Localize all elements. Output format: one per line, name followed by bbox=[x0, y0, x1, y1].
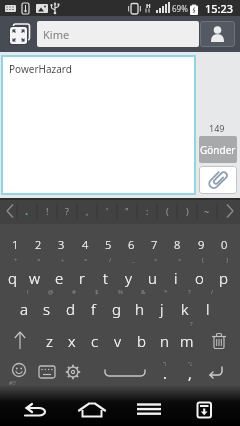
staticText: 0 bbox=[221, 237, 228, 252]
button[interactable] bbox=[98, 362, 152, 384]
button[interactable]: 0 bbox=[213, 234, 235, 254]
button[interactable]: PowerHazard bbox=[1, 55, 196, 195]
button[interactable]: c bbox=[84, 328, 106, 354]
staticText: = bbox=[84, 256, 88, 264]
button[interactable]: b bbox=[130, 328, 152, 354]
staticText: > bbox=[178, 256, 182, 264]
button[interactable]: y bbox=[117, 265, 141, 291]
button[interactable]: ~ bbox=[198, 201, 216, 221]
button[interactable] bbox=[20, 402, 50, 420]
staticText: 5 bbox=[105, 237, 112, 252]
staticText: _ bbox=[132, 256, 135, 264]
button[interactable]: Gönder bbox=[199, 136, 237, 163]
staticText: b bbox=[137, 331, 146, 351]
button[interactable]: d bbox=[58, 296, 82, 322]
button[interactable] bbox=[136, 402, 162, 420]
staticText: * bbox=[164, 288, 168, 296]
staticText: q bbox=[8, 268, 17, 288]
staticText: $ bbox=[95, 288, 99, 296]
button[interactable]: x bbox=[61, 328, 83, 354]
button[interactable]: f bbox=[81, 296, 105, 322]
button[interactable]: j bbox=[150, 296, 174, 322]
button[interactable]: n bbox=[153, 328, 175, 354]
button[interactable]: : bbox=[138, 201, 156, 221]
button[interactable] bbox=[62, 362, 84, 382]
button[interactable]: ( bbox=[158, 201, 176, 221]
staticText: •¡ bbox=[163, 360, 167, 366]
staticText: e bbox=[55, 268, 64, 288]
button[interactable] bbox=[207, 330, 231, 352]
button[interactable]: 3 bbox=[50, 234, 72, 254]
button[interactable] bbox=[200, 21, 235, 47]
staticText: ( bbox=[166, 205, 169, 217]
staticText: 7 bbox=[151, 237, 158, 252]
button[interactable]: h bbox=[127, 296, 151, 322]
button[interactable]: p bbox=[211, 265, 235, 291]
button[interactable]: 2 bbox=[27, 234, 49, 254]
button[interactable]: 7 bbox=[143, 234, 165, 254]
button[interactable]: o bbox=[187, 265, 211, 291]
staticText: y bbox=[125, 268, 133, 288]
button[interactable]: t bbox=[94, 265, 118, 291]
button[interactable]: , bbox=[181, 363, 199, 383]
staticText: ) bbox=[186, 205, 189, 217]
button[interactable]: , bbox=[78, 201, 96, 221]
button[interactable]: r bbox=[70, 265, 94, 291]
staticText: l bbox=[206, 299, 210, 319]
button[interactable] bbox=[199, 166, 237, 194]
staticText: + bbox=[14, 256, 18, 264]
button[interactable]: 9 bbox=[190, 234, 212, 254]
button[interactable]: s bbox=[35, 296, 59, 322]
button[interactable]: 8 bbox=[166, 234, 188, 254]
staticText: @ bbox=[48, 288, 54, 296]
button[interactable]: u bbox=[140, 265, 164, 291]
staticText: 2 bbox=[35, 237, 42, 252]
staticText: . bbox=[25, 203, 29, 218]
button[interactable]: . bbox=[156, 363, 174, 383]
button[interactable]: l bbox=[196, 296, 220, 322]
button[interactable]: 6 bbox=[120, 234, 142, 254]
button[interactable] bbox=[8, 330, 32, 352]
button[interactable]: . bbox=[18, 200, 36, 220]
staticText: 3 bbox=[58, 237, 65, 252]
button[interactable]: k bbox=[173, 296, 197, 322]
button[interactable]: 4 bbox=[74, 234, 96, 254]
button[interactable] bbox=[196, 402, 216, 420]
button[interactable]: ) bbox=[178, 201, 196, 221]
button[interactable]: z bbox=[38, 328, 60, 354]
staticText: h bbox=[135, 299, 144, 319]
staticText: o bbox=[195, 268, 204, 288]
staticText: 4 bbox=[82, 237, 89, 252]
staticText: 69% bbox=[172, 3, 188, 14]
button[interactable]: 1 bbox=[4, 234, 26, 254]
button[interactable]: w bbox=[23, 265, 47, 291]
button[interactable]: ! bbox=[38, 201, 56, 221]
staticText: % bbox=[118, 288, 123, 296]
button[interactable]: i bbox=[164, 265, 188, 291]
button[interactable]: g bbox=[104, 296, 128, 322]
button[interactable]: ' bbox=[98, 201, 116, 221]
staticText: x bbox=[68, 331, 76, 351]
staticText: H bbox=[146, 2, 151, 10]
staticText: a bbox=[20, 299, 29, 319]
button[interactable]: ? bbox=[58, 201, 76, 221]
button[interactable] bbox=[8, 22, 32, 46]
button[interactable] bbox=[204, 362, 228, 384]
staticText: ] bbox=[226, 256, 228, 264]
button[interactable]: m bbox=[176, 328, 198, 354]
button[interactable]: v bbox=[107, 328, 129, 354]
button[interactable]: q bbox=[0, 265, 24, 291]
button[interactable]: a bbox=[12, 296, 36, 322]
staticText: r bbox=[79, 268, 85, 288]
staticText: •¿ bbox=[188, 360, 193, 366]
staticText: f bbox=[91, 299, 96, 319]
button[interactable]: e bbox=[47, 265, 71, 291]
button[interactable]: 5 bbox=[97, 234, 119, 254]
button[interactable]: Kime bbox=[37, 21, 199, 47]
button[interactable] bbox=[76, 402, 108, 420]
staticText: u bbox=[148, 268, 157, 288]
button[interactable] bbox=[6, 362, 30, 386]
button[interactable] bbox=[36, 362, 58, 382]
staticText: . bbox=[163, 364, 167, 383]
button[interactable]: " bbox=[118, 201, 136, 221]
